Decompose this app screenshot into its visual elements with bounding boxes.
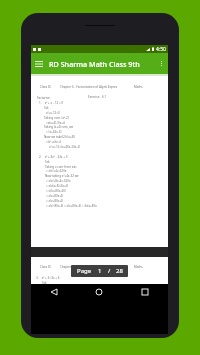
staticText: 3. x² + 3√3x + 6 <box>36 276 60 280</box>
staticText: = (x+4)(x-3) <box>46 130 62 134</box>
staticText: RD Sharma Math Class 9th <box>49 59 140 69</box>
staticText: Taking com. (x²-2) <box>44 116 69 120</box>
staticText: 4:50 <box>156 46 166 53</box>
staticText: 1 <box>98 267 102 275</box>
staticText: Sol: <box>42 281 48 285</box>
staticText: = x(x²+4x-32)(x <box>46 169 67 173</box>
staticText: Sol: <box>45 160 51 164</box>
staticText: Exercise - 6.1 <box>88 95 107 99</box>
staticText: =(x²+x)(x-4 <box>46 140 61 144</box>
staticText: = x(x+8)(x-4) <box>46 199 63 203</box>
staticText: = x(x³-8)(x-4) = x(x+8)(x-4) = 3x(x+8)(x <box>46 204 97 208</box>
staticText: Class IX <box>40 265 51 269</box>
staticText: Class IX <box>40 85 51 89</box>
staticText: = x(x(x+8)-4(x+8 <box>46 184 68 188</box>
staticText: 28 <box>116 267 123 275</box>
button[interactable]: Navigation menu <box>31 53 46 74</box>
staticText: =x(x+4)-3(x+4 <box>46 121 65 125</box>
staticText: Maths <box>134 265 143 269</box>
staticText: Chapter 6 - Factorization of Algeb Expre… <box>60 265 118 269</box>
button[interactable]: Recent apps <box>122 284 168 300</box>
staticText: Now taking x²+4x-32 we <box>45 174 79 178</box>
staticText: x²+x-12=0 <box>46 111 60 115</box>
button[interactable]: Back <box>31 284 76 300</box>
staticText: Taking x com from eac <box>45 165 77 169</box>
button[interactable]: Home <box>76 284 122 300</box>
staticText: Page <box>77 267 92 275</box>
button[interactable]: More options <box>155 53 168 74</box>
staticText: x²+x-12=(x+4)(x-3)(x-2) <box>49 145 81 149</box>
staticText: = x(x+8)(x-4) <box>46 194 63 198</box>
staticText: Chapter 6 - Factorization of Algeb Expre… <box>60 85 118 89</box>
staticText: / <box>108 267 111 275</box>
staticText: Maths <box>134 85 143 89</box>
staticText: = x((x+8)(x-4))) <box>46 189 66 193</box>
staticText: 1. x² + x - 12 = 0 <box>39 101 64 105</box>
staticText: 2. x³ + 4x² - 32x + 3 <box>39 155 68 159</box>
staticText: Now we take(2)=(x+4)( <box>44 135 76 139</box>
button[interactable]: Page <box>71 265 128 277</box>
staticText: Factorise: <box>37 96 51 100</box>
staticText: Taking (x+4) com, we <box>44 125 74 129</box>
staticText: = x(x²+8x-4x-32)(x <box>46 179 71 183</box>
staticText: Sol: <box>44 106 50 110</box>
